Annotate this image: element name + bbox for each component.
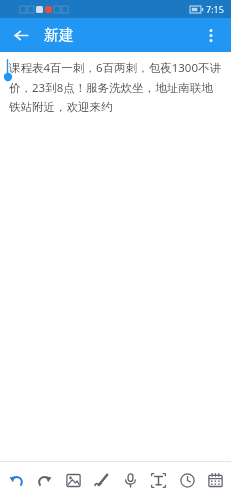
button[interactable]: Insert image [60, 467, 86, 493]
button[interactable]: Undo [3, 467, 29, 493]
button[interactable]: Back [6, 20, 36, 50]
button[interactable]: Calendar [202, 467, 228, 493]
button[interactable]: Text style [145, 467, 171, 493]
button[interactable]: Voice input [117, 467, 143, 493]
button[interactable]: Reminder [174, 467, 200, 493]
button[interactable]: Handwriting [88, 467, 114, 493]
staticText: 7:15 [206, 3, 224, 15]
staticText: 课程表4百一刺，6百两刺，包夜1300不讲价，23到8点！服务洗炊坐，地址南联地… [9, 60, 222, 115]
button[interactable]: Redo [31, 467, 57, 493]
button[interactable]: More options [197, 21, 225, 49]
staticText: 新建 [44, 26, 74, 45]
